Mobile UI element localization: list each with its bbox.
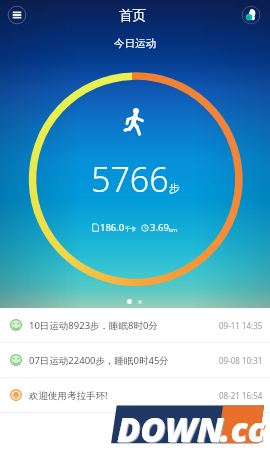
staticText: 5766 [91,156,169,202]
staticText: 07日运动22400步，睡眠0时45分 [29,354,169,367]
staticText: 3.69 [150,221,169,234]
button[interactable]: 欢迎使用考拉手环! [0,378,270,412]
staticText: 10日运动8923步，睡眠8时0分 [29,319,158,332]
button[interactable]: Menu [6,4,28,26]
staticText: DOWN [118,407,225,450]
button[interactable]: 07日运动22400步，睡眠0时45分 [0,343,270,377]
staticText: km [169,226,178,233]
button[interactable]: Device status [240,4,262,26]
staticText: 千卡 [125,226,136,233]
staticText: 09-11 14:35 [219,320,263,331]
staticText: 今日运动 [114,37,156,50]
staticText: 186.0 [100,221,125,234]
staticText: 步 [169,181,180,195]
staticText: 09-08 10:31 [219,355,263,366]
staticText: .cc [221,407,266,450]
staticText: .cc [220,406,265,450]
button[interactable]: 10日运动8923步，睡眠8时0分 [0,308,270,342]
staticText: DOWN [117,406,224,450]
staticText: 首页 [119,7,146,24]
staticText: 08-21 16:54 [219,390,263,401]
staticText: 欢迎使用考拉手环! [29,389,108,402]
